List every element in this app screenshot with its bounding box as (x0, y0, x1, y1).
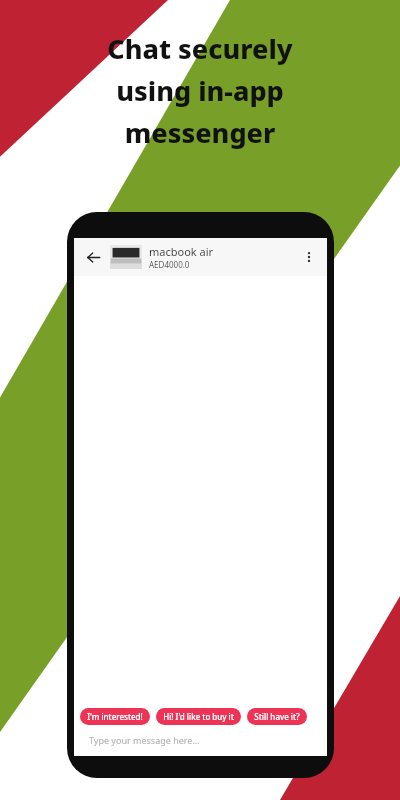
button[interactable]: Back (80, 244, 106, 270)
button[interactable]: Type your message here... (80, 729, 321, 751)
staticText: macbook air (149, 244, 214, 259)
staticText: I'm interested! (87, 711, 143, 722)
button[interactable]: More options (297, 245, 321, 269)
staticText: AED4000.0 (149, 259, 190, 270)
button[interactable]: Still have it? (247, 708, 307, 725)
staticText: Type your message here... (89, 734, 200, 746)
staticText: Hi! I'd like to buy it (163, 711, 234, 722)
button[interactable]: Hi! I'd like to buy it (156, 708, 241, 725)
staticText: Chat securely using in-app messenger (107, 30, 293, 151)
button[interactable]: I'm interested! (80, 708, 150, 725)
staticText: Still have it? (254, 711, 300, 722)
